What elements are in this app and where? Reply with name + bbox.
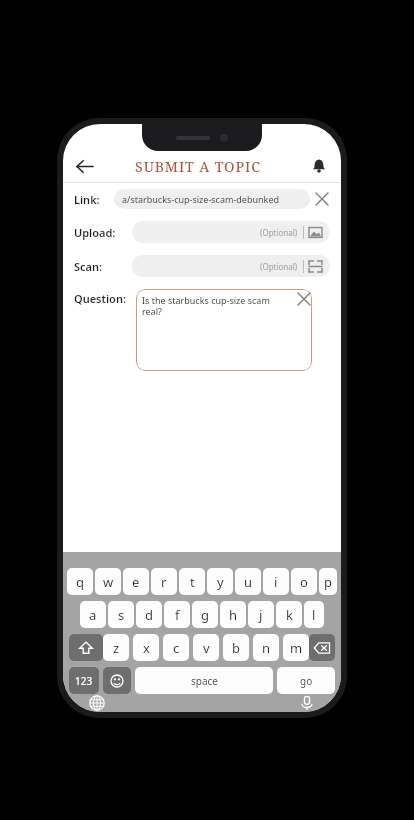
button[interactable]: l: [304, 601, 324, 628]
button[interactable]: [309, 634, 335, 661]
staticText: w: [103, 573, 114, 591]
staticText: f: [175, 606, 180, 624]
button[interactable]: q: [67, 568, 93, 595]
button[interactable]: w: [95, 568, 121, 595]
button[interactable]: v: [193, 634, 219, 661]
staticText: q: [76, 573, 84, 591]
button[interactable]: x: [133, 634, 159, 661]
button[interactable]: a/starbucks-cup-size-scam-debunked: [114, 189, 310, 209]
button[interactable]: n: [253, 634, 279, 661]
button[interactable]: z: [103, 634, 129, 661]
staticText: y: [217, 573, 224, 591]
staticText: 123: [75, 674, 93, 688]
staticText: d: [145, 606, 153, 624]
staticText: (Optional): [260, 227, 298, 238]
button[interactable]: r: [151, 568, 177, 595]
button[interactable]: f: [164, 601, 190, 628]
button[interactable]: Clear: [314, 191, 330, 207]
button[interactable]: 123: [69, 667, 99, 694]
staticText: t: [190, 573, 195, 591]
button[interactable]: p: [319, 568, 337, 595]
button[interactable]: k: [276, 601, 302, 628]
button[interactable]: Change keyboard: [85, 694, 109, 712]
button[interactable]: c: [163, 634, 189, 661]
staticText: b: [232, 639, 240, 657]
staticText: j: [259, 606, 263, 624]
staticText: h: [229, 606, 238, 624]
staticText: o: [300, 573, 308, 591]
button[interactable]: o: [291, 568, 317, 595]
staticText: n: [262, 639, 271, 657]
staticText: Link:: [74, 192, 100, 207]
staticText: p: [324, 573, 332, 591]
staticText: x: [143, 639, 150, 657]
staticText: s: [118, 606, 125, 624]
staticText: c: [173, 639, 180, 657]
button[interactable]: space: [135, 667, 273, 694]
button[interactable]: Back: [69, 151, 99, 181]
button[interactable]: h: [220, 601, 246, 628]
staticText: m: [290, 639, 303, 657]
staticText: Question:: [74, 291, 126, 306]
staticText: space: [191, 674, 218, 688]
button[interactable]: i: [263, 568, 289, 595]
staticText: a: [89, 606, 97, 624]
button[interactable]: m: [283, 634, 309, 661]
staticText: l: [312, 606, 316, 624]
staticText: v: [203, 639, 210, 657]
staticText: Upload:: [74, 225, 116, 240]
staticText: a/starbucks-cup-size-scam-debunked: [122, 193, 279, 205]
staticText: Is the starbucks cup-size scam real?: [142, 294, 292, 318]
staticText: e: [132, 573, 140, 591]
button[interactable]: [69, 634, 103, 661]
button[interactable]: go: [277, 667, 335, 694]
button[interactable]: u: [235, 568, 261, 595]
staticText: z: [113, 639, 120, 657]
button[interactable]: e: [123, 568, 149, 595]
button[interactable]: (Optional): [132, 255, 330, 277]
staticText: Scan:: [74, 259, 103, 274]
staticText: go: [300, 674, 313, 688]
button[interactable]: Notifications: [305, 152, 333, 180]
button[interactable]: y: [207, 568, 233, 595]
button[interactable]: (Optional): [132, 221, 330, 243]
staticText: u: [244, 573, 253, 591]
staticText: i: [274, 573, 278, 591]
button[interactable]: t: [179, 568, 205, 595]
button[interactable]: b: [223, 634, 249, 661]
button[interactable]: j: [248, 601, 274, 628]
staticText: k: [286, 606, 293, 624]
button[interactable]: a: [80, 601, 106, 628]
button[interactable]: d: [136, 601, 162, 628]
staticText: (Optional): [260, 261, 298, 272]
button[interactable]: [103, 667, 131, 694]
staticText: r: [161, 573, 167, 591]
button[interactable]: s: [108, 601, 134, 628]
button[interactable]: Voice input: [295, 694, 319, 712]
button[interactable]: g: [192, 601, 218, 628]
button[interactable]: Clear: [296, 291, 312, 307]
staticText: SUBMIT A TOPIC: [135, 157, 261, 176]
staticText: g: [201, 606, 209, 624]
button[interactable]: Is the starbucks cup-size scam real?: [136, 289, 312, 371]
